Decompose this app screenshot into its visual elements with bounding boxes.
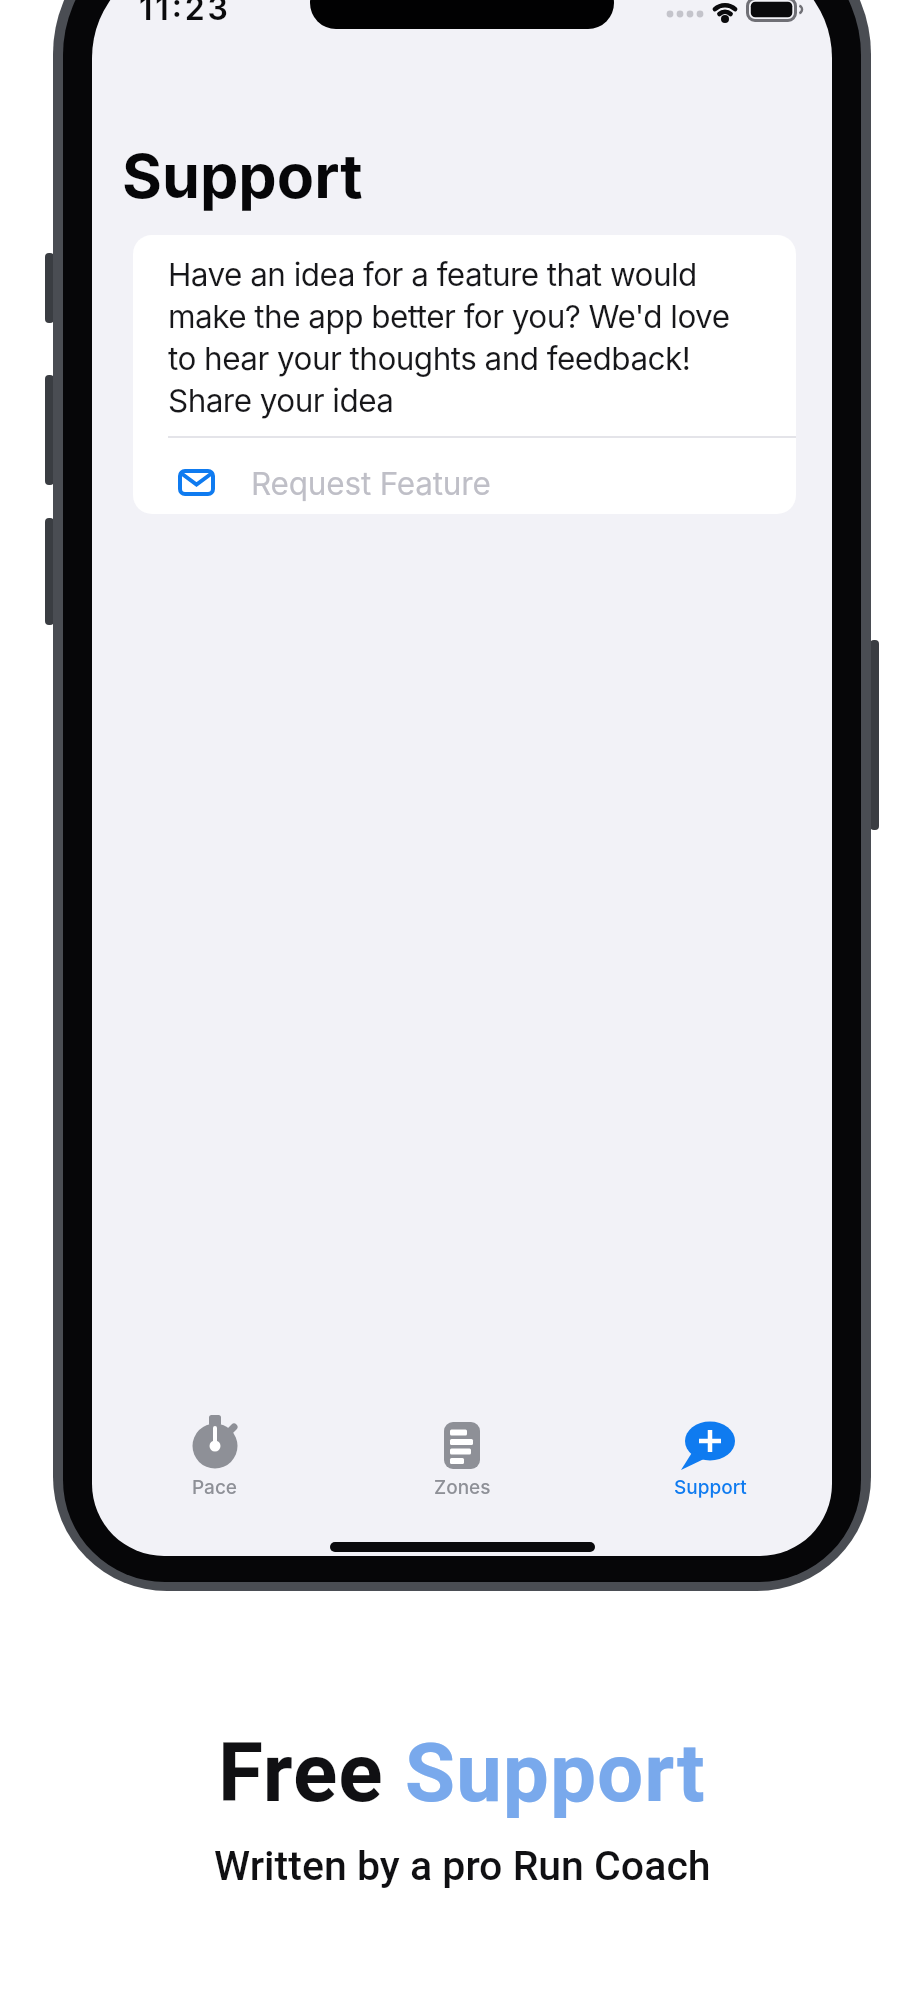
staticText: Written by a pro Run Coach — [214, 1842, 711, 1890]
staticText: Pace — [192, 1476, 238, 1499]
staticText: 11:23 — [139, 0, 231, 28]
button[interactable] — [648, 1405, 772, 1509]
staticText: Request Feature — [251, 464, 491, 502]
staticText: Support — [674, 1476, 747, 1499]
staticText: Free Support — [218, 1725, 706, 1821]
button[interactable]: Request Feature — [133, 438, 796, 514]
button[interactable] — [153, 1405, 277, 1509]
staticText: Support — [122, 139, 363, 213]
staticText: Have an idea for a feature that would ma… — [168, 255, 730, 419]
staticText: Zones — [434, 1476, 491, 1499]
button[interactable] — [400, 1405, 524, 1509]
